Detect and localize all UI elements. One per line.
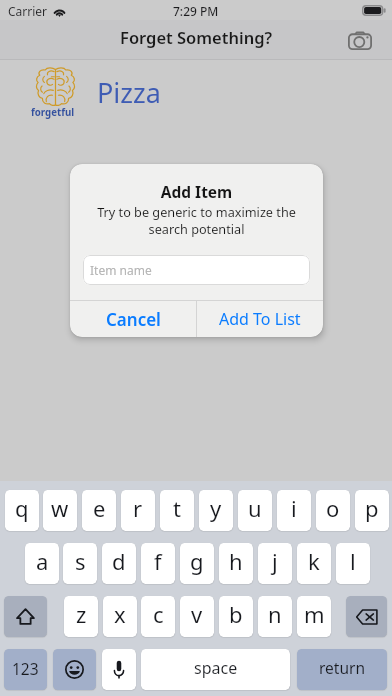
staticText: s bbox=[75, 546, 86, 576]
staticText: x bbox=[114, 599, 126, 629]
button[interactable]: r bbox=[121, 490, 155, 531]
staticText: m bbox=[304, 599, 325, 629]
staticText: b bbox=[229, 599, 243, 629]
staticText: a bbox=[36, 546, 49, 576]
button[interactable]: f bbox=[141, 543, 175, 584]
staticText: r bbox=[133, 493, 143, 523]
button[interactable]: Camera bbox=[345, 25, 375, 55]
button[interactable]: l bbox=[336, 543, 370, 584]
staticText: w bbox=[51, 493, 69, 523]
button[interactable]: m bbox=[297, 596, 331, 637]
button[interactable]: d bbox=[102, 543, 136, 584]
staticText: Cancel bbox=[106, 308, 161, 331]
button[interactable]: s bbox=[63, 543, 97, 584]
staticText: forgetful bbox=[31, 106, 75, 119]
button[interactable]: o bbox=[316, 490, 350, 531]
staticText: Pizza bbox=[97, 74, 161, 111]
staticText: u bbox=[248, 493, 262, 523]
staticText: e bbox=[93, 493, 106, 523]
button[interactable]: y bbox=[199, 490, 233, 531]
button[interactable]: c bbox=[141, 596, 175, 637]
button[interactable]: w bbox=[43, 490, 77, 531]
button[interactable]: space bbox=[141, 649, 290, 690]
staticText: k bbox=[308, 546, 320, 576]
button[interactable]: return bbox=[297, 649, 387, 690]
button[interactable]: Emoji bbox=[53, 649, 96, 690]
button[interactable]: z bbox=[64, 596, 98, 637]
button[interactable]: v bbox=[180, 596, 214, 637]
button[interactable]: Item name bbox=[83, 255, 310, 285]
staticText: Carrier bbox=[8, 3, 48, 19]
button[interactable]: b bbox=[219, 596, 253, 637]
staticText: c bbox=[153, 599, 164, 629]
button[interactable]: h bbox=[219, 543, 253, 584]
staticText: q bbox=[15, 493, 29, 523]
button[interactable]: p bbox=[355, 490, 389, 531]
button[interactable]: q bbox=[5, 490, 39, 531]
staticText: t bbox=[173, 493, 181, 523]
button[interactable]: n bbox=[258, 596, 292, 637]
staticText: j bbox=[272, 546, 278, 576]
button[interactable]: u bbox=[238, 490, 272, 531]
staticText: Try to be generic to maximize the search… bbox=[82, 203, 311, 238]
staticText: o bbox=[326, 493, 340, 523]
staticText: space bbox=[194, 657, 238, 679]
staticText: f bbox=[154, 546, 162, 576]
staticText: v bbox=[191, 599, 203, 629]
button[interactable]: 123 bbox=[4, 649, 47, 690]
button[interactable]: x bbox=[103, 596, 137, 637]
staticText: p bbox=[365, 493, 379, 523]
staticText: i bbox=[291, 493, 297, 523]
button[interactable]: i bbox=[277, 490, 311, 531]
button[interactable]: Backspace bbox=[346, 596, 387, 637]
button[interactable]: t bbox=[160, 490, 194, 531]
staticText: Add To List bbox=[219, 308, 301, 330]
staticText: n bbox=[268, 599, 282, 629]
button[interactable]: k bbox=[297, 543, 331, 584]
button[interactable]: Cancel bbox=[70, 301, 196, 337]
staticText: Forget Something? bbox=[120, 26, 273, 48]
staticText: z bbox=[76, 599, 87, 629]
staticText: d bbox=[112, 546, 126, 576]
staticText: l bbox=[350, 546, 356, 576]
button[interactable]: a bbox=[25, 543, 59, 584]
button[interactable]: j bbox=[258, 543, 292, 584]
staticText: y bbox=[210, 493, 222, 523]
staticText: g bbox=[190, 546, 204, 576]
staticText: 7:29 PM bbox=[173, 3, 219, 19]
staticText: 123 bbox=[12, 658, 39, 679]
staticText: h bbox=[229, 546, 243, 576]
button[interactable]: e bbox=[82, 490, 116, 531]
staticText: return bbox=[319, 657, 365, 678]
button[interactable]: Add To List bbox=[197, 301, 323, 337]
staticText: Item name bbox=[90, 262, 152, 278]
button[interactable]: g bbox=[180, 543, 214, 584]
button[interactable]: Dictation bbox=[102, 649, 136, 690]
button[interactable]: Shift bbox=[4, 596, 47, 637]
staticText: Add Item bbox=[70, 181, 323, 202]
